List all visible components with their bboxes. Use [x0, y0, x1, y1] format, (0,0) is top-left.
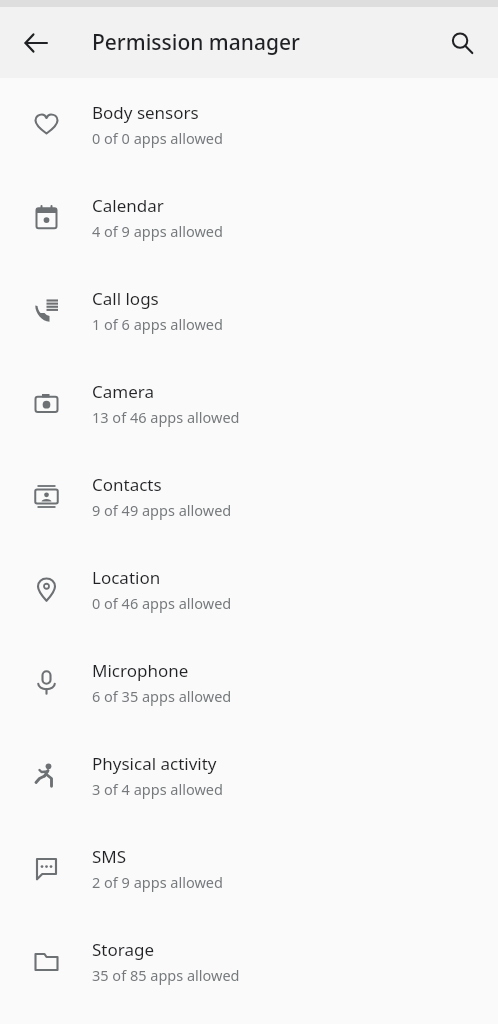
staticText: Calendar [92, 194, 164, 217]
staticText: Permission manager [92, 28, 300, 57]
staticText: 3 of 4 apps allowed [92, 779, 223, 799]
staticText: 2 of 9 apps allowed [92, 872, 223, 892]
staticText: Camera [92, 380, 154, 403]
staticText: 35 of 85 apps allowed [92, 965, 240, 985]
button[interactable]: Storage [0, 915, 498, 1008]
staticText: 4 of 9 apps allowed [92, 221, 223, 241]
staticText: SMS [92, 845, 127, 868]
staticText: Physical activity [92, 752, 217, 775]
staticText: 0 of 46 apps allowed [92, 593, 232, 613]
staticText: Contacts [92, 473, 162, 496]
button[interactable]: Back [12, 19, 60, 67]
staticText: Location [92, 566, 161, 589]
button[interactable]: SMS [0, 822, 498, 915]
staticText: 6 of 35 apps allowed [92, 686, 232, 706]
button[interactable]: Microphone [0, 636, 498, 729]
staticText: 1 of 6 apps allowed [92, 314, 223, 334]
button[interactable]: Call logs [0, 264, 498, 357]
button[interactable]: Calendar [0, 171, 498, 264]
button[interactable]: Location [0, 543, 498, 636]
button[interactable]: Contacts [0, 450, 498, 543]
button[interactable]: Body sensors [0, 78, 498, 171]
staticText: 9 of 49 apps allowed [92, 500, 232, 520]
staticText: Call logs [92, 287, 159, 310]
button[interactable]: Camera [0, 357, 498, 450]
button[interactable]: Physical activity [0, 729, 498, 822]
staticText: Storage [92, 938, 155, 961]
staticText: 0 of 0 apps allowed [92, 128, 223, 148]
staticText: Microphone [92, 659, 189, 682]
button[interactable]: Search [438, 19, 486, 67]
staticText: 13 of 46 apps allowed [92, 407, 240, 427]
staticText: Body sensors [92, 101, 199, 124]
